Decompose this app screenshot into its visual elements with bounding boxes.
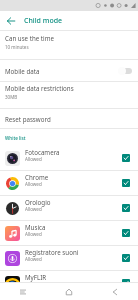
staticText: Chrome xyxy=(25,173,49,181)
staticText: Allowed xyxy=(25,156,42,162)
staticText: Reset password xyxy=(5,115,51,123)
button[interactable]: Musica xyxy=(0,221,138,245)
staticText: 10 minutes xyxy=(5,44,29,50)
staticText: Orologio xyxy=(25,198,51,206)
staticText: Allowed xyxy=(25,206,42,212)
button[interactable]: Back xyxy=(3,13,19,29)
staticText: Registratore suoni xyxy=(25,248,79,256)
staticText: Mobile data restrictions xyxy=(5,84,74,92)
button[interactable]: Home xyxy=(46,284,92,300)
button[interactable]: Reset password xyxy=(0,109,138,128)
button[interactable]: Fotocamera xyxy=(0,146,138,170)
staticText: MyFLIR xyxy=(25,273,47,281)
staticText: Allowed xyxy=(25,231,42,237)
button[interactable]: MyFLIR xyxy=(0,271,138,295)
button[interactable]: Chrome xyxy=(0,171,138,195)
button[interactable]: Orologio xyxy=(0,196,138,220)
staticText: Child mode xyxy=(24,16,63,26)
button[interactable]: Can use the time xyxy=(0,31,138,59)
button[interactable]: Back xyxy=(92,284,138,300)
button[interactable]: Mobile data xyxy=(0,60,138,81)
staticText: Mobile data xyxy=(5,67,118,75)
staticText: Allowed xyxy=(25,256,42,262)
button[interactable]: Registratore suoni xyxy=(0,246,138,270)
staticText: 30MB xyxy=(5,94,18,100)
staticText: White list xyxy=(5,135,26,141)
button[interactable]: Recent apps xyxy=(0,284,46,300)
button[interactable]: Mobile data restrictions xyxy=(0,82,138,108)
staticText: Can use the time xyxy=(5,34,54,42)
staticText: Musica xyxy=(25,223,46,231)
staticText: Allowed xyxy=(25,281,42,287)
staticText: Allowed xyxy=(25,181,42,187)
staticText: Fotocamera xyxy=(25,148,60,156)
